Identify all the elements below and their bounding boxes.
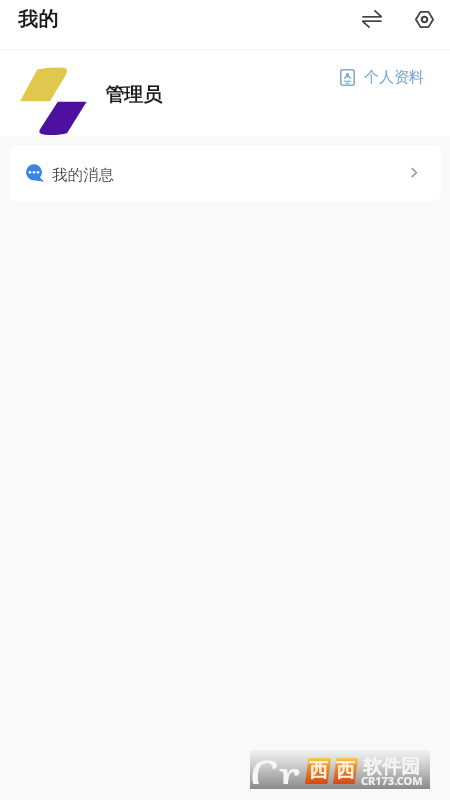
staticText: 西	[336, 759, 355, 783]
staticText: 我的消息	[52, 165, 114, 185]
button[interactable]: Switch account	[352, 0, 392, 38]
staticText: 个人资料	[364, 68, 424, 87]
staticText: 我的	[18, 7, 58, 32]
staticText: 管理员	[105, 83, 162, 107]
staticText: 西	[309, 759, 328, 783]
button[interactable]: 我的消息	[9, 145, 441, 201]
button[interactable]: 个人资料	[340, 68, 424, 87]
staticText: 软件园	[363, 755, 420, 779]
staticText: CR173.COM	[361, 773, 423, 788]
staticText: Cr	[250, 745, 300, 784]
button[interactable]: Settings	[404, 0, 444, 38]
